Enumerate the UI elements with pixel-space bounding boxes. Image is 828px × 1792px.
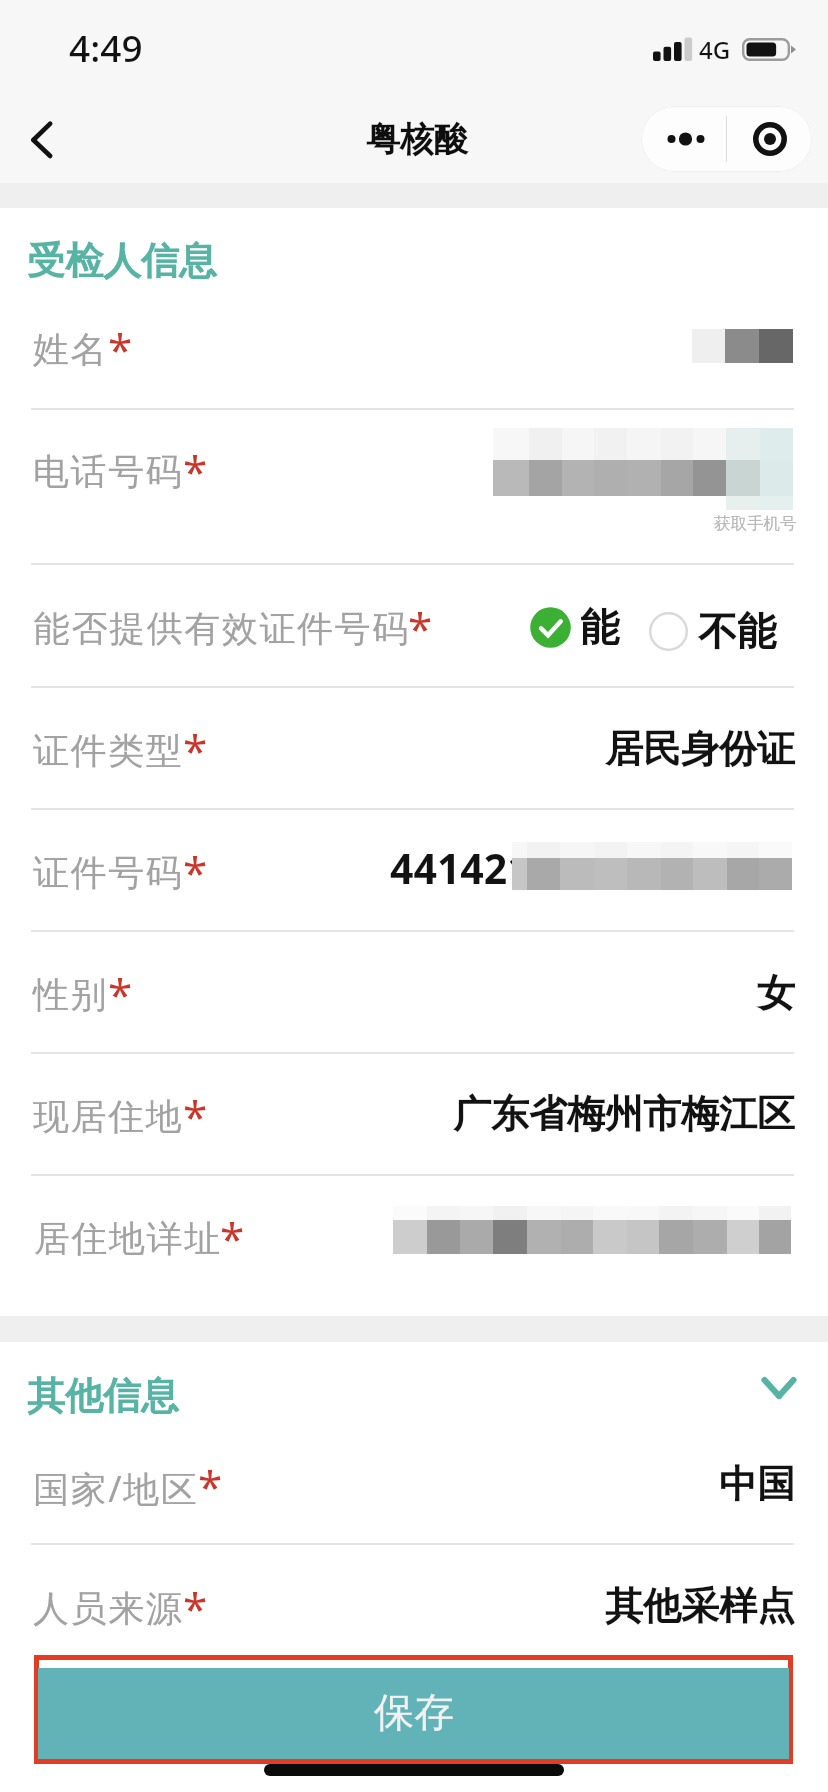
staticText: 保存 bbox=[374, 1687, 454, 1737]
button[interactable]: 保存 bbox=[38, 1668, 789, 1759]
staticText: * bbox=[183, 441, 208, 501]
staticText: 不能 bbox=[698, 607, 776, 656]
staticText: 证件类型 bbox=[33, 728, 184, 773]
staticText: 获取手机号 bbox=[714, 513, 797, 534]
staticText: 能否提供有效证件号码 bbox=[33, 606, 409, 651]
staticText: 人员来源 bbox=[33, 1586, 184, 1631]
staticText: * bbox=[183, 842, 208, 902]
staticText: 其他采样点 bbox=[605, 1582, 795, 1630]
staticText: * bbox=[183, 720, 208, 780]
staticText: 居住地详址 bbox=[33, 1216, 221, 1261]
staticText: 性别 bbox=[33, 972, 109, 1017]
staticText: 居民身份证 bbox=[605, 725, 795, 773]
staticText: 受检人信息 bbox=[27, 237, 217, 285]
staticText: * bbox=[408, 598, 433, 658]
staticText: 国家/地区 bbox=[33, 1464, 199, 1513]
staticText: * bbox=[108, 319, 133, 379]
staticText: 现居住地 bbox=[33, 1094, 184, 1139]
staticText: 441421 bbox=[390, 840, 531, 896]
button[interactable]: Close mini program bbox=[727, 106, 812, 172]
button[interactable]: 能 bbox=[530, 601, 619, 653]
staticText: 电话号码 bbox=[33, 449, 184, 494]
staticText: * bbox=[108, 964, 133, 1024]
staticText: 姓名 bbox=[33, 327, 109, 372]
staticText: 能 bbox=[580, 603, 619, 652]
staticText: 粤核酸 bbox=[366, 118, 468, 161]
staticText: * bbox=[220, 1208, 245, 1268]
staticText: 其他信息 bbox=[27, 1372, 179, 1420]
button[interactable]: More options bbox=[641, 106, 726, 172]
staticText: * bbox=[183, 1086, 208, 1146]
button[interactable]: Back bbox=[8, 98, 86, 182]
staticText: 女 bbox=[757, 969, 795, 1017]
staticText: 证件号码 bbox=[33, 850, 184, 895]
staticText: 广东省梅州市梅江区 bbox=[453, 1090, 795, 1138]
button[interactable]: Collapse other information bbox=[746, 1355, 812, 1421]
staticText: 中国 bbox=[719, 1460, 795, 1508]
staticText: * bbox=[198, 1456, 223, 1516]
staticText: 4G bbox=[699, 33, 731, 66]
button[interactable]: 不能 bbox=[649, 605, 776, 657]
staticText: 4:49 bbox=[69, 22, 143, 72]
staticText: * bbox=[183, 1578, 208, 1638]
